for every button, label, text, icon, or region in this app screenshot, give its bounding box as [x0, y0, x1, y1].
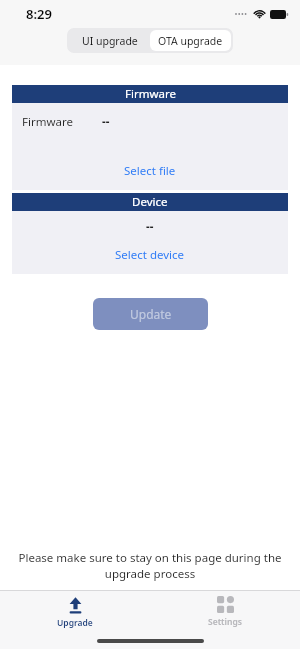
- button[interactable]: Settings: [150, 591, 300, 633]
- staticText: 8:29: [26, 5, 52, 23]
- staticText: Settings: [208, 616, 242, 628]
- staticText: --: [102, 114, 110, 130]
- staticText: Select device: [115, 247, 185, 263]
- staticText: Firmware: [22, 114, 73, 130]
- button[interactable]: Upgrade: [0, 591, 150, 633]
- button[interactable]: OTA upgrade: [150, 30, 231, 51]
- staticText: --: [146, 219, 154, 235]
- staticText: OTA upgrade: [158, 34, 223, 48]
- staticText: Please make sure to stay on this page du…: [10, 550, 290, 581]
- staticText: Device: [132, 194, 168, 210]
- button[interactable]: UI upgrade: [69, 30, 150, 51]
- staticText: Upgrade: [57, 617, 93, 629]
- staticText: Firmware: [125, 86, 176, 102]
- button[interactable]: Select file: [12, 160, 288, 182]
- button[interactable]: Update: [93, 298, 208, 330]
- staticText: Select file: [124, 163, 176, 179]
- staticText: UI upgrade: [82, 34, 138, 48]
- button[interactable]: Select device: [12, 244, 288, 266]
- staticText: Update: [130, 306, 172, 322]
